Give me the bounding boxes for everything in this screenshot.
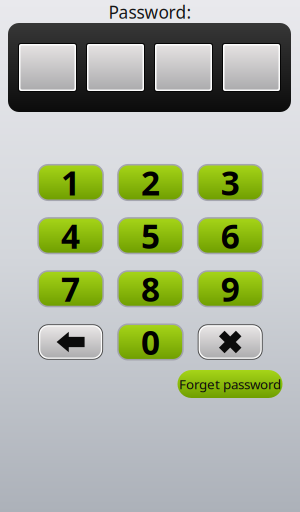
- button[interactable]: Forget password: [177, 370, 282, 398]
- button[interactable]: 1: [38, 165, 103, 200]
- staticText: Forget password: [179, 375, 281, 393]
- button[interactable]: 6: [198, 218, 263, 253]
- staticText: 8: [141, 267, 160, 311]
- staticText: Password:: [108, 0, 191, 23]
- staticText: 2: [141, 160, 160, 205]
- staticText: 0: [141, 320, 160, 364]
- button[interactable]: Backspace: [38, 324, 103, 360]
- staticText: 9: [221, 267, 240, 311]
- button[interactable]: 3: [198, 165, 263, 200]
- button[interactable]: 7: [38, 271, 103, 307]
- staticText: 7: [61, 267, 80, 311]
- staticText: 4: [61, 214, 80, 258]
- staticText: 5: [141, 214, 160, 258]
- button[interactable]: 0: [118, 324, 183, 360]
- button[interactable]: 8: [118, 271, 183, 307]
- button[interactable]: 4: [38, 218, 103, 253]
- staticText: 6: [221, 214, 240, 258]
- staticText: 3: [221, 160, 240, 205]
- button[interactable]: 2: [118, 165, 183, 200]
- button[interactable]: 5: [118, 218, 183, 253]
- button[interactable]: Clear: [198, 324, 263, 360]
- staticText: 1: [61, 160, 80, 205]
- button[interactable]: 9: [198, 271, 263, 307]
